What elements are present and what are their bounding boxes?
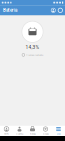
staticText: Más	[56, 132, 60, 135]
staticText: Batería	[3, 8, 17, 13]
button[interactable]: Ayuda	[39, 125, 52, 136]
button[interactable]: Account	[50, 5, 57, 15]
staticText: Perfil	[4, 132, 9, 135]
staticText: Ayuda	[42, 132, 48, 135]
staticText: 14,3%	[25, 45, 39, 50]
button[interactable]: Perfil	[0, 125, 13, 136]
button[interactable]: Cuenta	[13, 125, 26, 136]
button[interactable]: Help	[57, 5, 64, 15]
staticText: Tiempo restante	[26, 53, 43, 56]
button[interactable]: Tienda	[26, 125, 39, 136]
button[interactable]: Más	[52, 125, 65, 136]
staticText: Tienda	[29, 132, 35, 135]
staticText: Cuenta	[16, 132, 23, 135]
